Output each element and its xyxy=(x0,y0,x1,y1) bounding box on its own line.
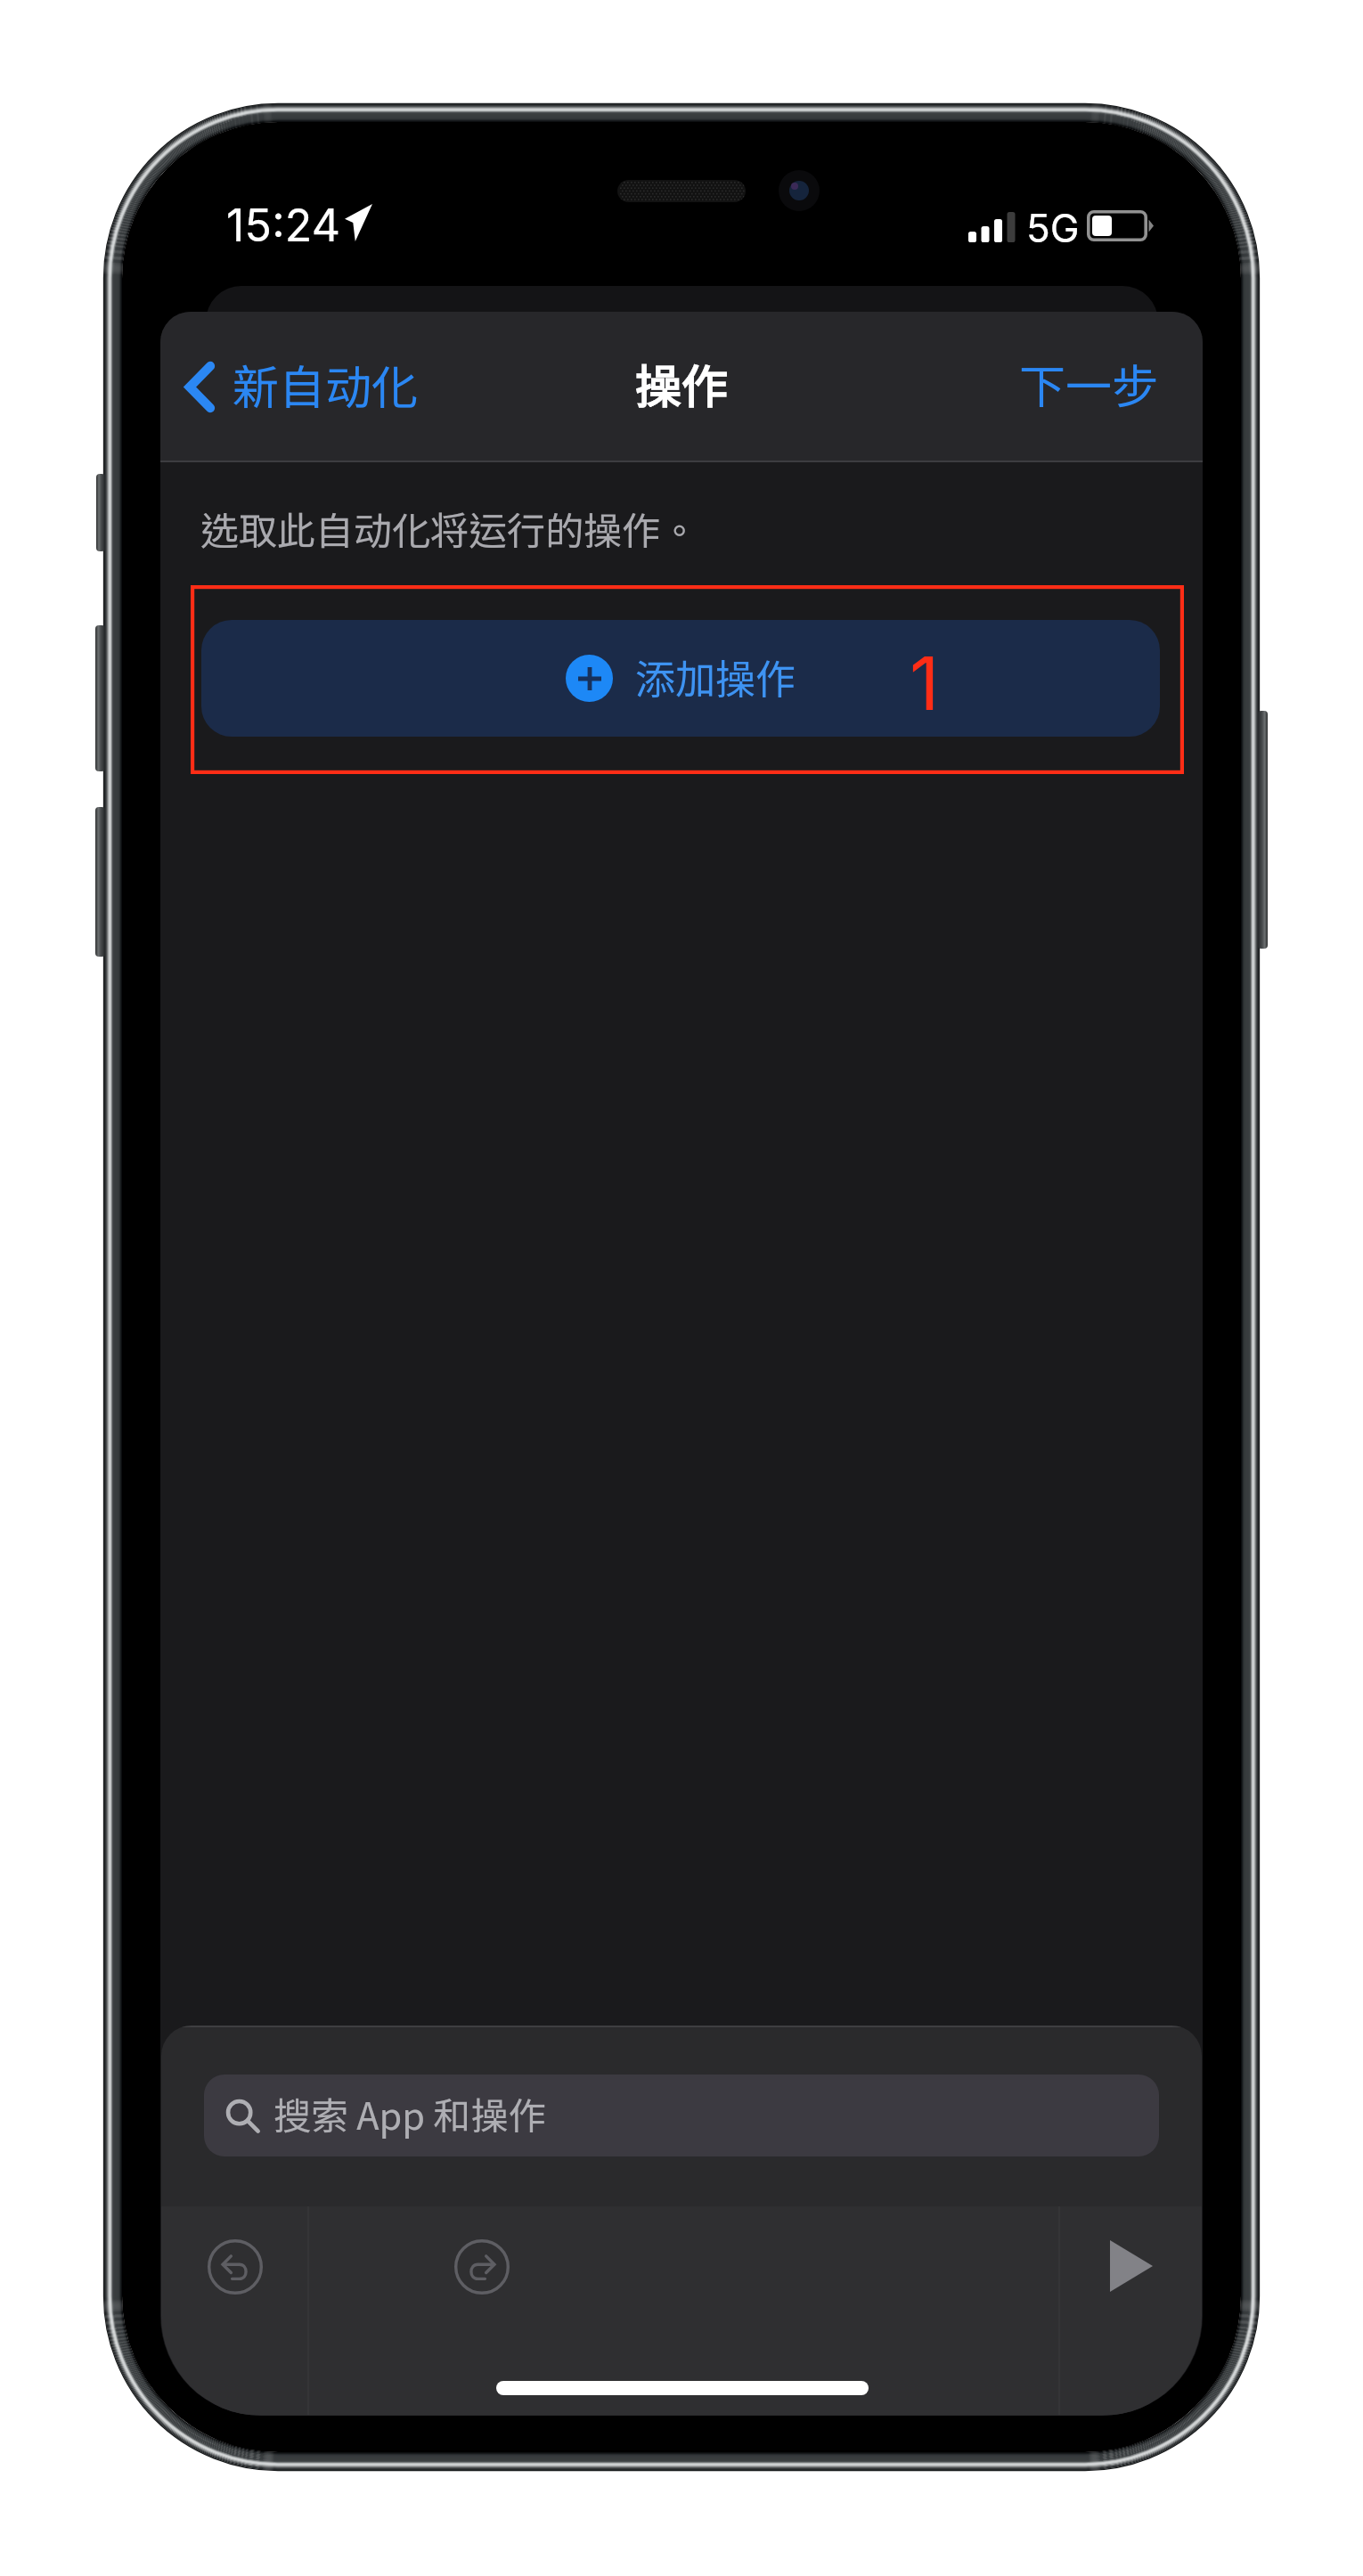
button[interactable]: Undo xyxy=(208,2239,263,2295)
staticText: 下一步 xyxy=(1019,359,1159,413)
staticText: 搜索 App 和操作 xyxy=(273,2093,546,2138)
button[interactable]: Run xyxy=(1110,2240,1153,2292)
button[interactable]: Redo xyxy=(454,2239,510,2295)
staticText: 1 xyxy=(910,640,940,728)
button[interactable]: 新自动化 xyxy=(185,333,419,440)
button[interactable]: 下一步 xyxy=(992,312,1187,461)
staticText: 新自动化 xyxy=(233,360,419,414)
staticText: 5G xyxy=(1026,204,1080,251)
button[interactable]: 添加操作 xyxy=(201,620,1160,737)
staticText: 操作 xyxy=(635,359,729,413)
staticText: 添加操作 xyxy=(635,655,796,702)
button[interactable]: 搜索 App 和操作 xyxy=(204,2075,1159,2156)
staticText: 选取此自动化将运行的操作。 xyxy=(200,508,698,553)
staticText: 15:24 xyxy=(226,199,341,252)
